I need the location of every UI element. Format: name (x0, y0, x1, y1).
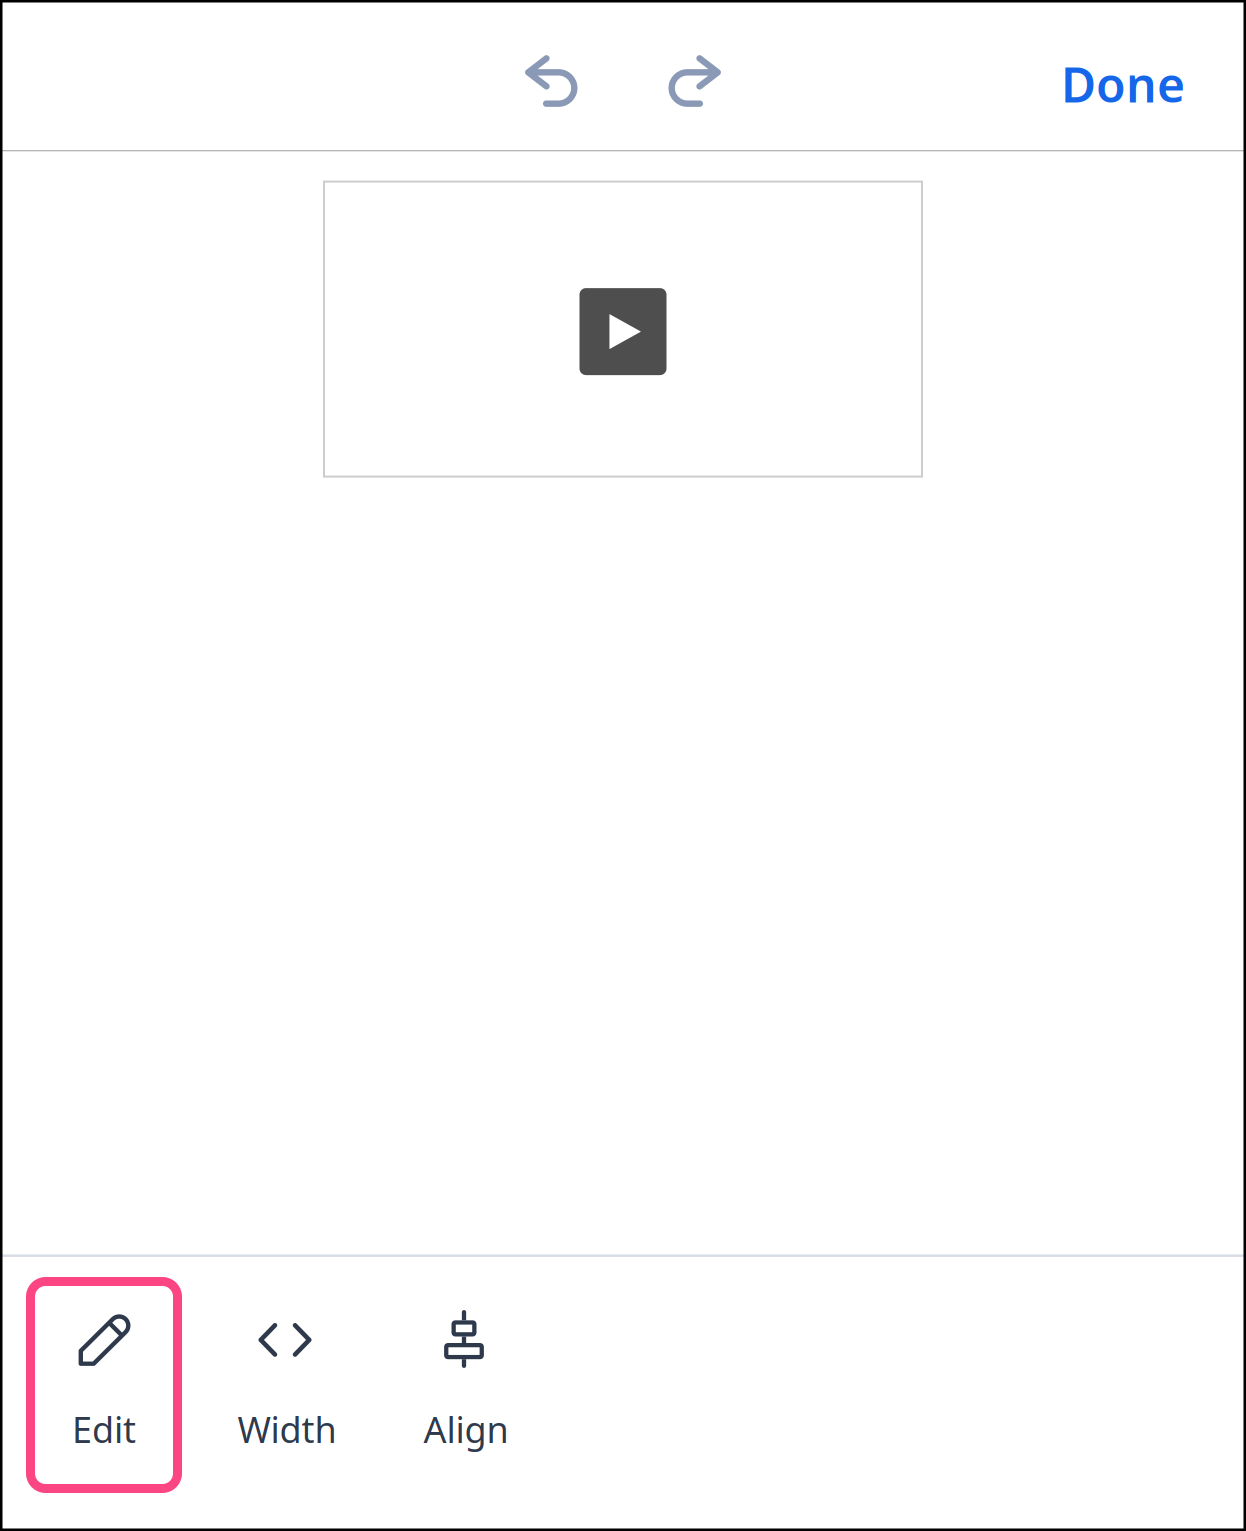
button[interactable]: Done (1037, 17, 1209, 133)
button[interactable]: Undo (502, 27, 598, 123)
button[interactable]: Redo (647, 27, 743, 123)
button[interactable]: Edit (26, 1277, 182, 1493)
button[interactable]: Video block (324, 182, 922, 477)
staticText: Done (1061, 52, 1185, 116)
staticText: Width (237, 1405, 336, 1453)
button[interactable]: Width (209, 1277, 365, 1493)
staticText: Align (423, 1405, 508, 1453)
button[interactable]: Align (388, 1277, 544, 1493)
staticText: Edit (72, 1405, 136, 1453)
